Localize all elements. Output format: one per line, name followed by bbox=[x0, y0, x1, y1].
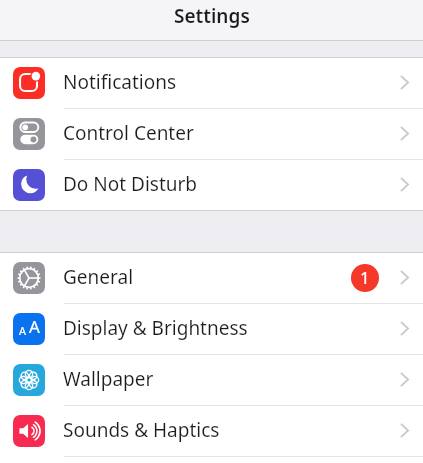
staticText: Control Center bbox=[63, 120, 194, 146]
staticText: Notifications bbox=[63, 69, 177, 95]
other: Open Display & Brightness bbox=[400, 321, 409, 336]
staticText: General bbox=[63, 264, 134, 290]
other: Open Control Center bbox=[400, 126, 409, 141]
staticText: Sounds & Haptics bbox=[63, 417, 220, 443]
button[interactable]: Do Not Disturb bbox=[0, 160, 423, 210]
staticText: Display & Brightness bbox=[63, 315, 248, 341]
other: Open General bbox=[400, 270, 409, 285]
button[interactable]: General bbox=[0, 253, 423, 303]
staticText: Wallpaper bbox=[63, 366, 154, 392]
button[interactable]: Sounds & Haptics bbox=[0, 406, 423, 456]
other: Open Sounds & Haptics bbox=[400, 423, 409, 438]
other: Open Do Not Disturb bbox=[400, 177, 409, 192]
other: Open Wallpaper bbox=[400, 372, 409, 387]
staticText: A bbox=[29, 315, 40, 338]
staticText: Do Not Disturb bbox=[63, 171, 198, 197]
other: Open Notifications bbox=[400, 75, 409, 90]
button[interactable]: A bbox=[0, 304, 423, 354]
staticText: Settings bbox=[174, 3, 250, 29]
staticText: 1 bbox=[360, 266, 370, 289]
staticText: A bbox=[19, 323, 27, 338]
button[interactable]: Wallpaper bbox=[0, 355, 423, 405]
button[interactable]: Control Center bbox=[0, 109, 423, 159]
button[interactable]: Notifications bbox=[0, 58, 423, 108]
